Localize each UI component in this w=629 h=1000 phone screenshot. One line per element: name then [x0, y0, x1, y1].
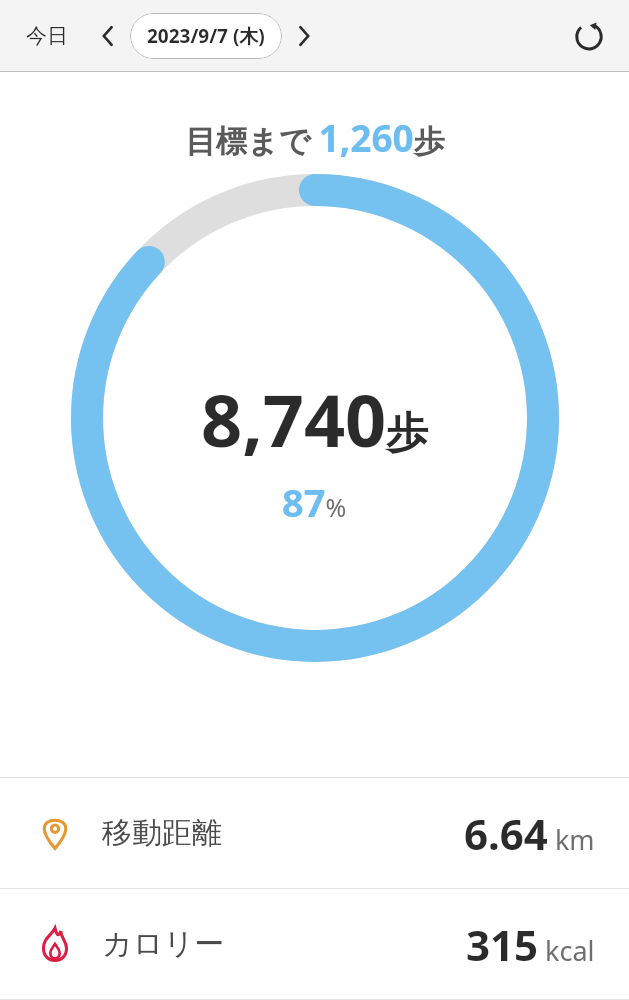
button[interactable]: 今日 — [18, 17, 76, 55]
button[interactable]: Calories — [0, 889, 629, 999]
staticText: 今日 — [26, 23, 68, 49]
staticText: カロリー — [102, 925, 225, 963]
staticText: 8,740歩 — [201, 370, 429, 468]
button[interactable]: 2023/9/7 (木) — [130, 13, 282, 59]
other: Calories — [34, 923, 76, 965]
button[interactable]: Refresh — [565, 12, 613, 60]
button[interactable]: Previous day — [86, 14, 130, 58]
button[interactable]: Next day — [282, 14, 326, 58]
button[interactable]: Distance — [0, 778, 629, 888]
staticText: 目標まで 1,260歩 — [185, 112, 445, 162]
staticText: 2023/9/7 (木) — [147, 23, 265, 49]
staticText: 87% — [282, 476, 347, 528]
staticText: 315 kcal — [466, 916, 595, 973]
staticText: 移動距離 — [102, 814, 222, 852]
other: Distance — [34, 812, 76, 854]
staticText: 6.64 km — [464, 805, 595, 862]
